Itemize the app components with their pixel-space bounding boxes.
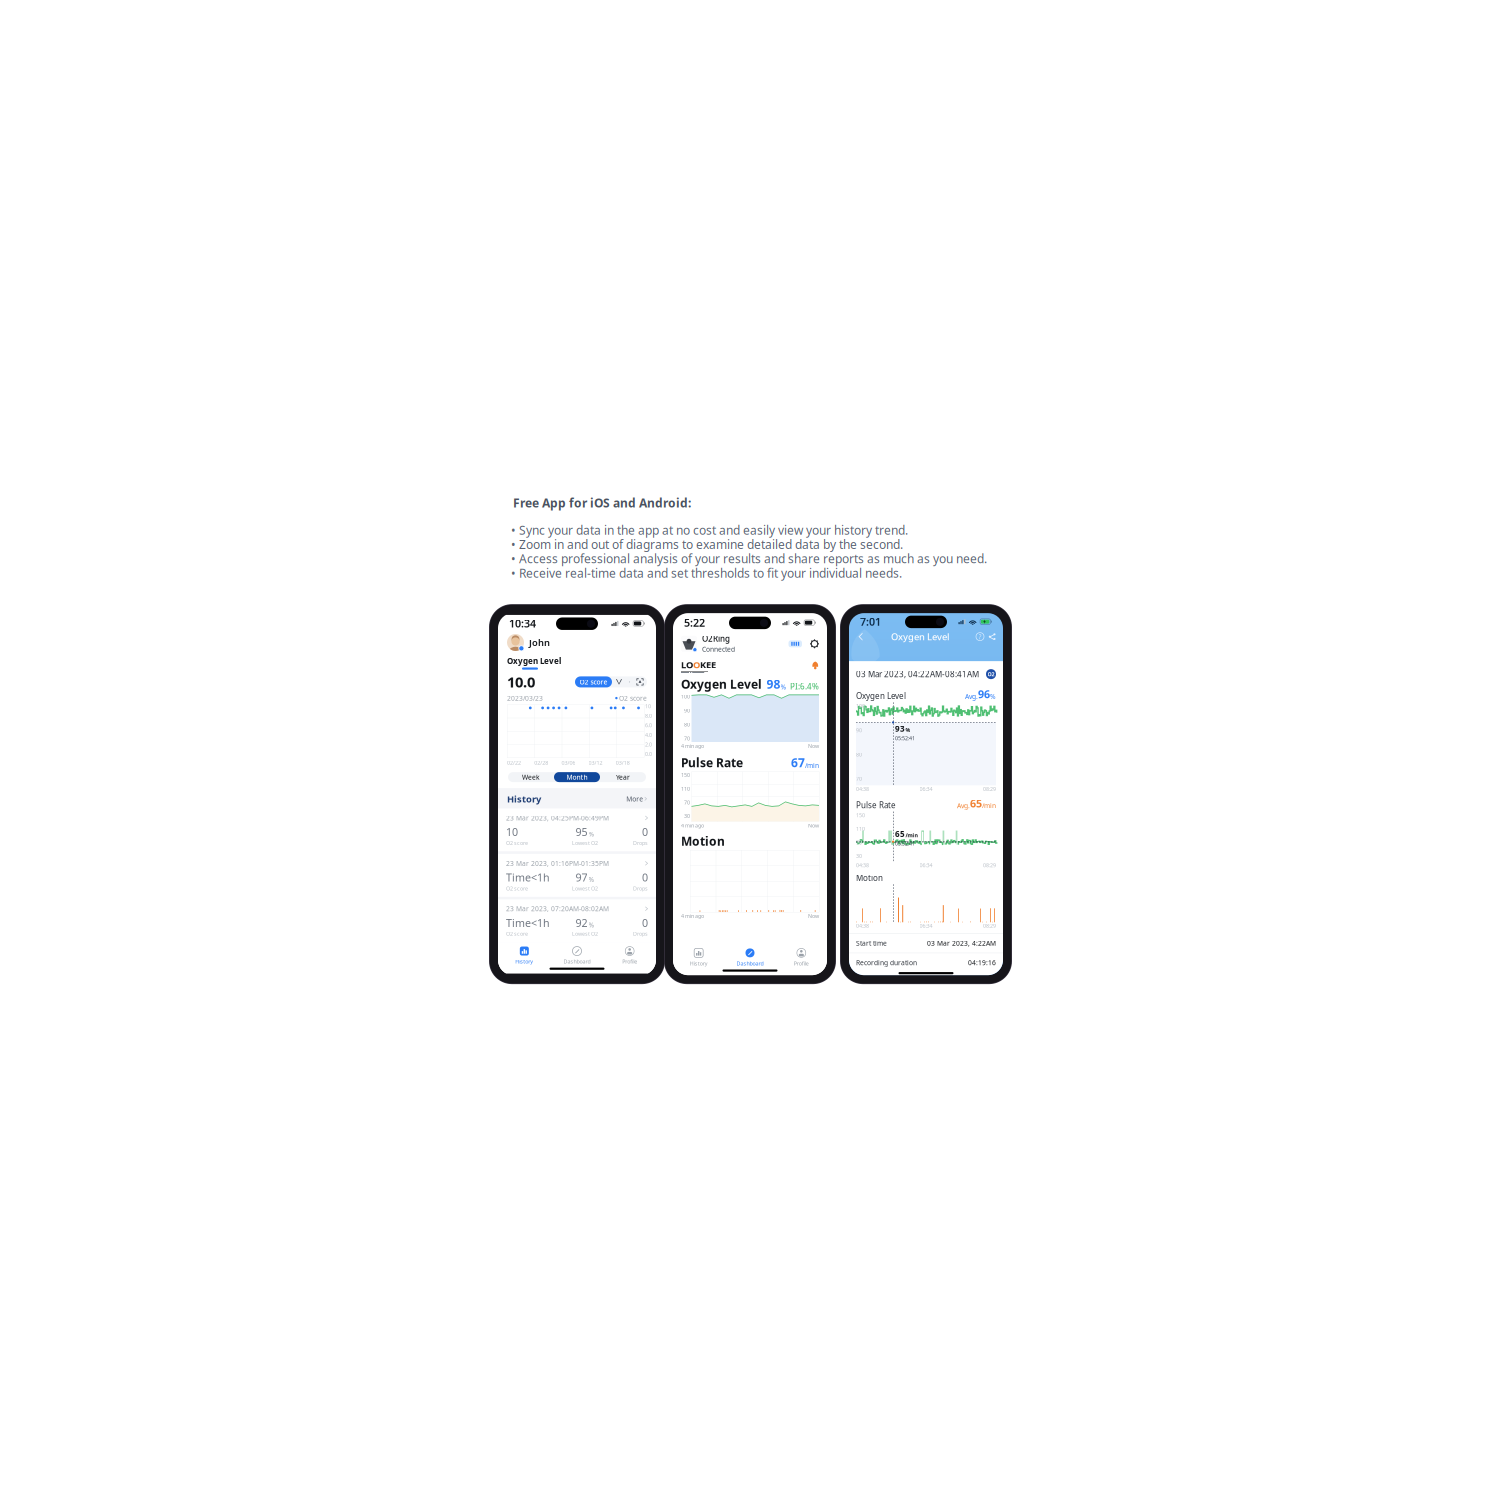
staticText: 03 Mar 2023, 4:22AM bbox=[927, 939, 996, 948]
button[interactable]: Profile bbox=[776, 944, 827, 967]
staticText: Time<1h bbox=[506, 870, 550, 884]
staticText: PI:6.4% bbox=[790, 681, 819, 692]
staticText: 05:52:41 bbox=[895, 735, 915, 742]
staticText: 08:29 bbox=[983, 922, 996, 929]
staticText: 23 Mar 2023, 04:25PM-06:49PM bbox=[506, 813, 609, 822]
staticText: 80 bbox=[856, 751, 862, 758]
staticText: 23 Mar 2023, 07:20AM-08:02AM bbox=[506, 904, 609, 913]
staticText: 10 bbox=[506, 825, 518, 839]
staticText: Profile bbox=[622, 958, 637, 965]
staticText: % bbox=[589, 830, 595, 838]
button[interactable]: Notifications bbox=[811, 661, 819, 670]
staticText: O2 score bbox=[506, 930, 528, 937]
staticText: 65 bbox=[895, 829, 905, 839]
staticText: 95 bbox=[575, 825, 587, 839]
staticText: More bbox=[626, 794, 643, 803]
staticText: Lowest O2 bbox=[572, 839, 598, 846]
staticText: Connected bbox=[702, 645, 735, 653]
staticText: 03 Mar 2023, 04:22AM-08:41AM bbox=[856, 669, 979, 679]
staticText: 90 bbox=[684, 707, 690, 714]
staticText: 04:19:16 bbox=[968, 958, 996, 967]
staticText: Start time bbox=[856, 939, 887, 948]
staticText: % bbox=[589, 920, 595, 929]
button[interactable]: Dashboard bbox=[724, 944, 776, 967]
staticText: Recording duration bbox=[856, 958, 917, 967]
staticText: 30 bbox=[684, 812, 690, 819]
staticText: Oxygen Level bbox=[681, 676, 762, 692]
button[interactable]: 23 Mar 2023, 04:25PM-06:49PM bbox=[498, 808, 656, 851]
staticText: 150 bbox=[856, 812, 865, 819]
staticText: Month bbox=[566, 773, 587, 782]
staticText: Now bbox=[808, 912, 819, 920]
staticText: 03/06 bbox=[561, 759, 575, 766]
staticText: 08:29 bbox=[983, 862, 996, 869]
staticText: Avg. bbox=[957, 801, 970, 810]
staticText: 0 bbox=[642, 916, 648, 930]
staticText: 70 bbox=[684, 735, 690, 742]
staticText: • Zoom in and out of diagrams to examine… bbox=[511, 536, 903, 552]
staticText: LO bbox=[681, 658, 693, 671]
staticText: Oxygen Level bbox=[507, 655, 561, 666]
staticText: 2023/03/23 bbox=[507, 694, 543, 703]
staticText: 4 min ago bbox=[681, 912, 704, 920]
staticText: 80 bbox=[684, 721, 690, 728]
staticText: O2 score bbox=[579, 677, 607, 686]
staticText: Time<1h bbox=[506, 916, 550, 930]
button[interactable]: O2 score bbox=[575, 676, 612, 687]
staticText: O2Ring bbox=[702, 633, 730, 644]
staticText: ? bbox=[978, 632, 981, 641]
staticText: • Receive real-time data and set thresho… bbox=[511, 565, 902, 581]
staticText: John bbox=[529, 636, 550, 649]
button[interactable]: History bbox=[673, 944, 724, 967]
button[interactable]: Week bbox=[508, 772, 554, 782]
button[interactable]: 23 Mar 2023, 01:16PM-01:35PM bbox=[498, 854, 656, 897]
staticText: O2 score bbox=[619, 694, 647, 703]
staticText: Week bbox=[522, 773, 540, 782]
button[interactable]: Share bbox=[986, 631, 998, 643]
staticText: 10:34 bbox=[509, 616, 536, 631]
button[interactable]: History bbox=[498, 942, 551, 965]
staticText: 2.0 bbox=[645, 741, 652, 748]
staticText: 65 bbox=[970, 796, 982, 811]
staticText: Now bbox=[808, 742, 819, 750]
staticText: % bbox=[990, 692, 996, 701]
staticText: 08:29 bbox=[983, 785, 996, 792]
staticText: 70 bbox=[856, 775, 862, 782]
staticText: 04:38 bbox=[856, 785, 869, 792]
staticText: 98 bbox=[766, 676, 780, 692]
staticText: 04:38 bbox=[856, 922, 869, 929]
button[interactable]: Profile bbox=[603, 942, 656, 965]
staticText: 03/12 bbox=[589, 759, 603, 766]
staticText: 0 bbox=[642, 870, 648, 884]
button[interactable]: Back bbox=[854, 630, 867, 643]
button[interactable]: Export bbox=[633, 676, 647, 687]
staticText: 6.0 bbox=[645, 722, 652, 729]
staticText: 5:22 bbox=[684, 616, 705, 630]
staticText: 30 bbox=[856, 852, 862, 860]
staticText: History bbox=[515, 958, 533, 965]
staticText: Motion bbox=[856, 873, 883, 883]
button[interactable]: Help bbox=[974, 631, 986, 643]
staticText: Year bbox=[616, 773, 630, 782]
staticText: /min bbox=[982, 801, 996, 810]
button[interactable]: Settings bbox=[807, 639, 819, 648]
button[interactable]: More bbox=[626, 794, 647, 803]
staticText: History bbox=[507, 793, 541, 805]
button[interactable]: Dashboard bbox=[551, 942, 603, 965]
staticText: 110 bbox=[681, 785, 690, 792]
staticText: Avg. bbox=[965, 692, 978, 701]
button[interactable]: Trend chart bbox=[612, 676, 626, 687]
button[interactable]: Year bbox=[600, 772, 646, 782]
staticText: 96 bbox=[978, 687, 990, 701]
staticText: O2 bbox=[987, 671, 994, 678]
staticText: Oxygen Level bbox=[856, 691, 906, 701]
staticText: /min bbox=[905, 832, 917, 839]
staticText: Dashboard bbox=[563, 958, 590, 965]
staticText: 06:34 bbox=[919, 922, 932, 929]
staticText: Drops bbox=[633, 839, 648, 846]
staticText: Pulse Rate bbox=[856, 800, 896, 810]
staticText: 02/22 bbox=[507, 759, 521, 766]
button[interactable]: 23 Mar 2023, 07:20AM-08:02AM bbox=[498, 899, 656, 942]
button[interactable]: Month bbox=[554, 772, 600, 782]
staticText: 100 bbox=[681, 693, 690, 700]
